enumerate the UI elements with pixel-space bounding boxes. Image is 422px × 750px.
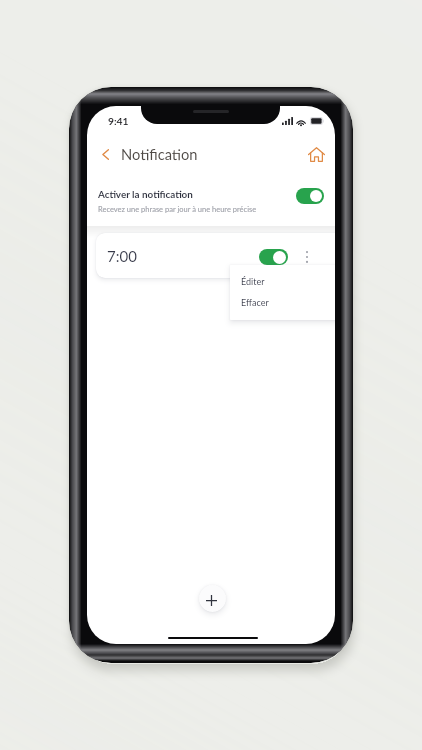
button[interactable]: Home <box>305 143 328 166</box>
button[interactable]: Back <box>96 145 114 163</box>
button[interactable]: Toggle <box>296 188 324 204</box>
staticText: Recevez une phrase par jour à une heure … <box>98 205 257 214</box>
button[interactable]: 7:00 <box>96 233 335 278</box>
staticText: 9:41 <box>108 115 129 127</box>
button[interactable]: Éditer <box>230 270 335 292</box>
staticText: 7:00 <box>107 247 137 265</box>
staticText: Notification <box>121 145 198 163</box>
staticText: Effacer <box>241 297 269 308</box>
button[interactable]: Effacer <box>230 291 335 313</box>
button[interactable]: Toggle <box>259 249 288 265</box>
staticText: Activer la notification <box>98 188 193 200</box>
button[interactable]: More options <box>299 249 315 265</box>
button[interactable]: Add <box>199 585 226 612</box>
staticText: Éditer <box>241 276 265 287</box>
